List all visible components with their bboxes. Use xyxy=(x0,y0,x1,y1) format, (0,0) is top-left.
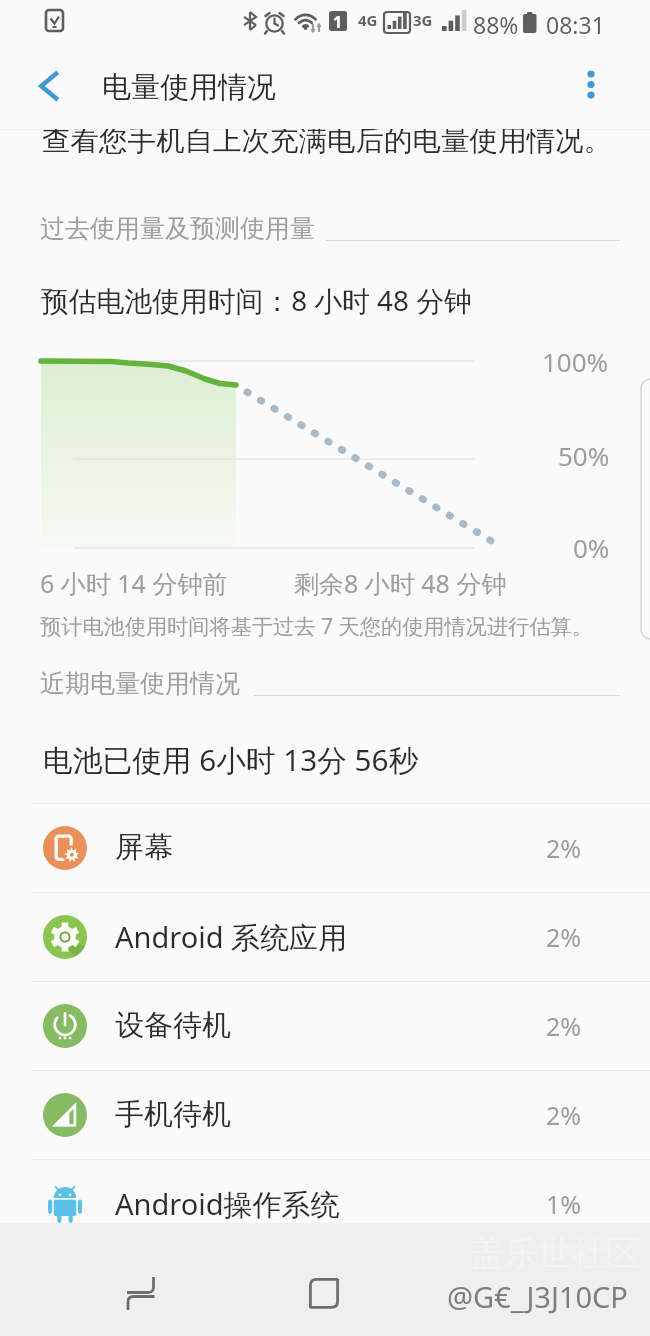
staticText: 电量使用情况 xyxy=(102,69,276,106)
staticText: @G€_J3J10CP xyxy=(447,1277,628,1316)
staticText: 2% xyxy=(546,920,582,954)
button[interactable]: Android操作系统 xyxy=(0,1159,650,1223)
button[interactable]: 设备待机 xyxy=(0,981,650,1070)
staticText: 08:31 xyxy=(546,9,605,40)
button[interactable]: Back xyxy=(18,55,80,117)
staticText: Android操作系统 xyxy=(115,1184,340,1223)
staticText: 过去使用量及预测使用量 xyxy=(40,213,315,244)
staticText: 预计电池使用时间将基于过去 7 天您的使用情况进行估算。 xyxy=(40,611,593,640)
staticText: 50% xyxy=(558,438,610,473)
button[interactable]: 手机待机 xyxy=(0,1070,650,1159)
staticText: Android 系统应用 xyxy=(115,917,348,957)
staticText: 0% xyxy=(573,530,610,565)
staticText: 2% xyxy=(546,1009,582,1043)
staticText: 近期电量使用情况 xyxy=(40,668,240,699)
button[interactable]: Home xyxy=(284,1253,364,1333)
staticText: 剩余8 小时 48 分钟 xyxy=(294,566,507,600)
staticText: 88% xyxy=(473,9,519,40)
staticText: 4G xyxy=(358,10,378,30)
button[interactable]: 屏幕 xyxy=(0,803,650,892)
button[interactable]: Android 系统应用 xyxy=(0,892,650,981)
staticText: 3G xyxy=(413,10,433,30)
staticText: 电池已使用 6小时 13分 56秒 xyxy=(43,739,419,780)
staticText: 100% xyxy=(542,344,609,379)
staticText: 2% xyxy=(546,1098,582,1132)
button[interactable]: More options xyxy=(560,56,622,118)
staticText: 1% xyxy=(546,1187,582,1221)
staticText: 屏幕 xyxy=(115,829,173,866)
staticText: 1 xyxy=(333,11,343,33)
staticText: 预估电池使用时间：8 小时 48 分钟 xyxy=(41,281,472,319)
staticText: 2% xyxy=(546,831,582,865)
staticText: 手机待机 xyxy=(115,1096,231,1133)
staticText: 设备待机 xyxy=(115,1007,231,1044)
button[interactable]: Recent apps xyxy=(101,1253,181,1333)
staticText: 查看您手机自上次充满电后的电量使用情况。 xyxy=(42,129,612,159)
staticText: 6 小时 14 分钟前 xyxy=(40,566,228,600)
